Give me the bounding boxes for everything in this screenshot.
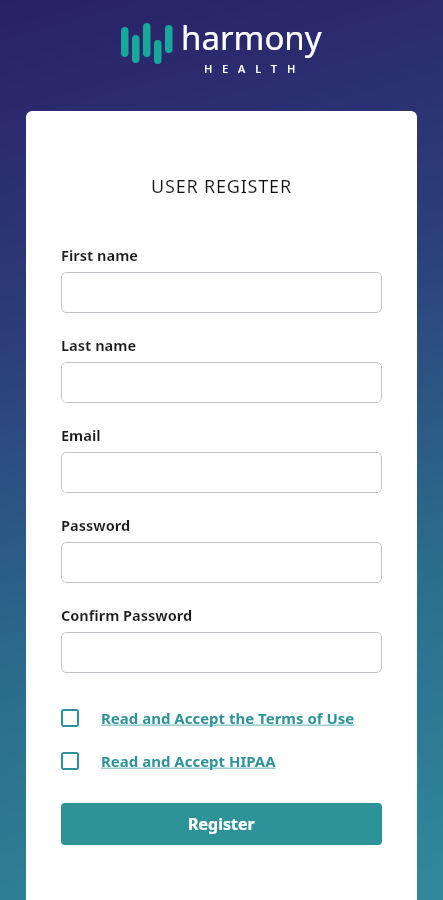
- button[interactable]: [61, 272, 382, 313]
- button[interactable]: [61, 452, 382, 493]
- staticText: First name: [61, 245, 139, 265]
- staticText: Last name: [61, 335, 137, 355]
- staticText: Read and Accept the Terms of Use: [101, 708, 355, 728]
- button[interactable]: [61, 362, 382, 403]
- button[interactable]: Read and Accept the Terms of Use: [61, 708, 382, 728]
- button[interactable]: [61, 632, 382, 673]
- staticText: Confirm Password: [61, 605, 193, 625]
- staticText: Register: [188, 813, 255, 835]
- staticText: Password: [61, 515, 131, 535]
- staticText: harmony: [181, 15, 322, 60]
- button[interactable]: [61, 542, 382, 583]
- button[interactable]: Read and Accept HIPAA: [61, 751, 382, 771]
- button[interactable]: Register: [61, 803, 382, 845]
- staticText: USER REGISTER: [61, 174, 382, 199]
- staticText: H E A L T H: [204, 61, 299, 76]
- staticText: Read and Accept HIPAA: [101, 751, 276, 771]
- staticText: Email: [61, 425, 101, 445]
